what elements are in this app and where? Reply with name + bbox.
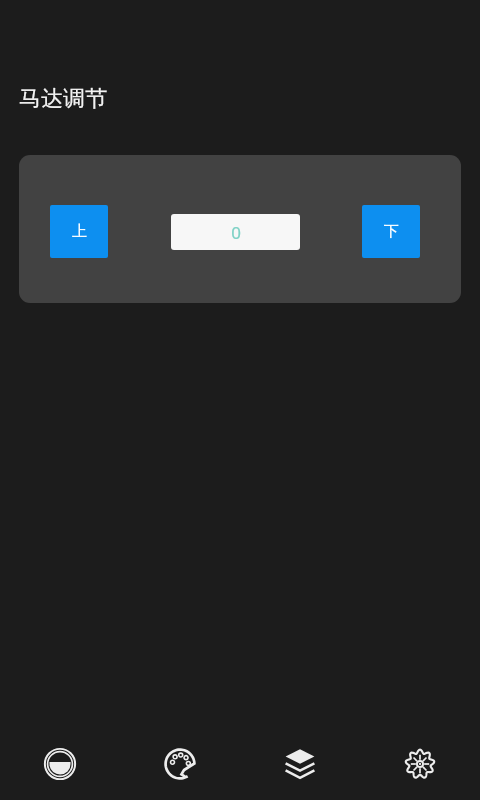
button[interactable]: 下 xyxy=(362,205,420,258)
button[interactable]: Layers xyxy=(240,728,360,800)
staticText: 下 xyxy=(384,222,399,241)
staticText: 0 xyxy=(231,221,241,244)
button[interactable]: 0 xyxy=(171,214,300,250)
staticText: 上 xyxy=(72,222,87,241)
button[interactable]: 上 xyxy=(50,205,108,258)
staticText: 马达调节 xyxy=(19,85,107,113)
button[interactable]: Bowl xyxy=(0,728,120,800)
button[interactable]: Palette xyxy=(120,728,240,800)
button[interactable]: Settings xyxy=(360,728,480,800)
